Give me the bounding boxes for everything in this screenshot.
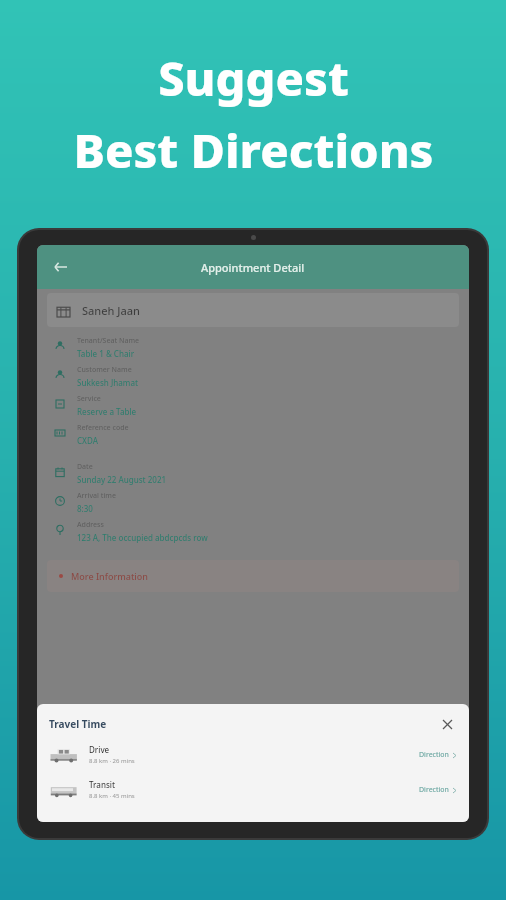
staticText: Reserve a Table (77, 406, 137, 417)
button[interactable]: Close (437, 714, 457, 734)
staticText: Customer Name (77, 365, 132, 375)
staticText: Service (77, 394, 101, 404)
staticText: CXDA (77, 435, 98, 446)
button[interactable]: Service (55, 394, 457, 417)
button[interactable]: Back (45, 252, 75, 282)
staticText: Direction (419, 750, 449, 760)
staticText: 8.8 km · 26 mins (89, 757, 135, 765)
button[interactable]: Date (55, 462, 457, 485)
button[interactable]: Transit (49, 779, 457, 800)
staticText: Table 1 & Chair (77, 348, 135, 359)
staticText: Travel Time (49, 717, 107, 731)
button[interactable]: Tenant/Seat Name (55, 336, 457, 359)
staticText: Tenant/Seat Name (77, 336, 140, 346)
button[interactable]: Saneh Jaan (47, 293, 459, 327)
staticText: More Information (71, 570, 148, 582)
staticText: Sunday 22 August 2021 (77, 474, 167, 485)
staticText: Date (77, 462, 93, 472)
staticText: Reference code (77, 423, 129, 433)
staticText: Transit (89, 779, 116, 790)
button[interactable]: Customer Name (55, 365, 457, 388)
staticText: Sukkesh Jhamat (77, 377, 139, 388)
button[interactable]: Drive (49, 744, 457, 765)
staticText: Address (77, 520, 104, 530)
button[interactable]: Reference code (55, 423, 457, 446)
staticText: Saneh Jaan (82, 303, 140, 318)
staticText: 8.8 km · 45 mins (89, 792, 135, 800)
staticText: 123 A, The occupied abdcpcds row (77, 532, 208, 543)
staticText: Suggest (158, 46, 349, 110)
staticText: Drive (89, 744, 110, 755)
button[interactable]: Arrival time (55, 491, 457, 514)
staticText: 8:30 (77, 503, 93, 514)
staticText: Arrival time (77, 491, 117, 501)
button[interactable]: More Information (47, 560, 459, 592)
staticText: Appointment Detail (201, 260, 305, 275)
staticText: Direction (419, 785, 449, 795)
button[interactable]: Address (55, 520, 457, 543)
staticText: Best Directions (73, 118, 434, 182)
